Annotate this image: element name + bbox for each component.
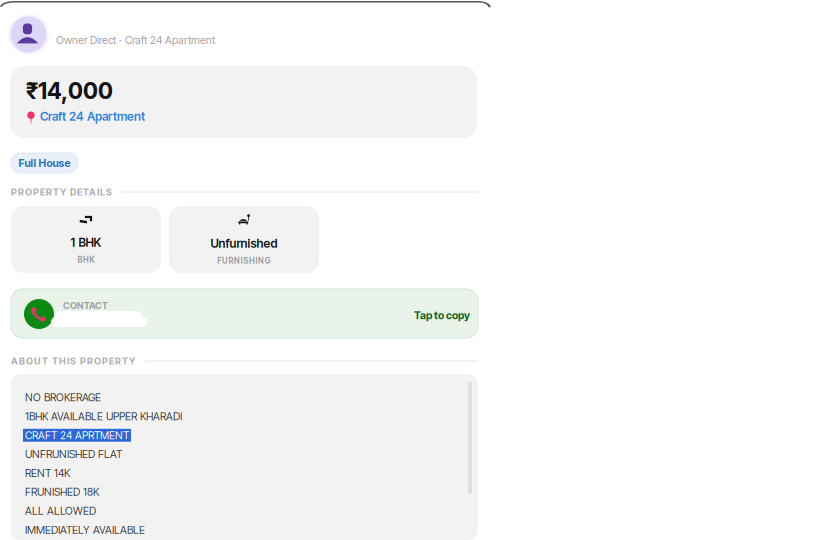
staticText: Unfurnished <box>210 236 277 251</box>
staticText: Owner Direct · Craft 24 Apartment <box>56 33 215 46</box>
staticText: PROPERTY DETAILS <box>11 186 112 198</box>
staticText: FURNISHING <box>217 256 271 266</box>
staticText: Full House <box>18 156 70 169</box>
staticText: ₹14,000 <box>26 77 113 104</box>
staticText: Tap to copy <box>414 309 470 322</box>
staticText: Craft 24 Apartment <box>40 109 145 124</box>
staticText: 1BHK AVAILABLE UPPER KHARADI <box>25 410 182 423</box>
button[interactable]: Full House <box>11 153 78 173</box>
staticText: UNFRUNISHED FLAT <box>25 448 122 461</box>
staticText: ABOUT THIS PROPERTY <box>11 355 135 367</box>
staticText: 1 BHK <box>70 235 101 250</box>
staticText: CONTACT <box>63 300 108 311</box>
staticText: FRUNISHED 18K <box>25 485 99 498</box>
staticText: NO BROKERAGE <box>25 391 101 404</box>
button[interactable]: CONTACT <box>11 289 478 338</box>
staticText: CRAFT 24 APRTMENT <box>25 429 129 442</box>
staticText: RENT 14K <box>25 467 70 479</box>
staticText: IMMEDIATELY AVAILABLE <box>25 523 145 536</box>
staticText: BHK <box>77 255 95 265</box>
staticText: ALL ALLOWED <box>25 504 96 517</box>
